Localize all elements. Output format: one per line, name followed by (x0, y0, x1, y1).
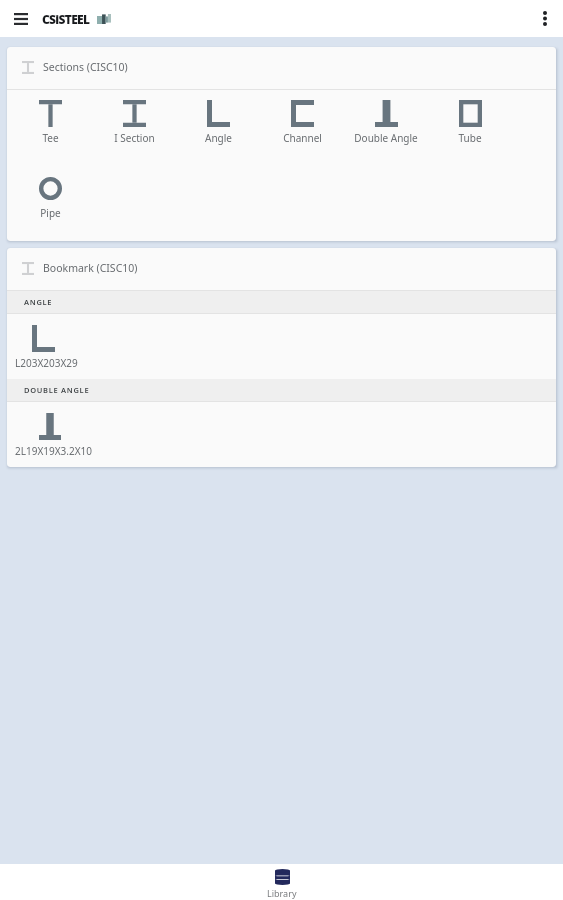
staticText: Tee (42, 131, 59, 145)
button[interactable]: Angle (176, 100, 260, 145)
staticText: Bookmark (CISC10) (43, 261, 138, 275)
button[interactable]: I Section (92, 100, 176, 145)
staticText: Tube (458, 131, 482, 145)
staticText: L203X203X29 (15, 356, 78, 370)
staticText: ANGLE (24, 297, 53, 307)
staticText: Angle (205, 131, 232, 145)
button[interactable]: Channel (260, 100, 344, 145)
button[interactable]: Double Angle (344, 100, 428, 145)
staticText: DOUBLE ANGLE (24, 385, 90, 395)
staticText: Library (267, 887, 297, 899)
staticText: Double Angle (354, 131, 418, 145)
staticText: Channel (283, 131, 322, 145)
staticText: Pipe (40, 206, 61, 220)
staticText: Sections (CISC10) (43, 60, 128, 74)
button[interactable]: More options (527, 0, 563, 37)
button[interactable]: Tee (8, 100, 92, 145)
staticText: I Section (114, 131, 155, 145)
button[interactable]: Tube (428, 100, 512, 145)
button[interactable]: L203X203X29 (7, 314, 556, 379)
button[interactable]: Library (243, 864, 321, 899)
button[interactable]: Menu (0, 0, 42, 37)
button[interactable]: Pipe (8, 175, 92, 220)
button[interactable]: 2L19X19X3.2X10 (7, 402, 556, 467)
staticText: CSiSTEEL (42, 11, 90, 27)
staticText: 2L19X19X3.2X10 (15, 444, 92, 458)
